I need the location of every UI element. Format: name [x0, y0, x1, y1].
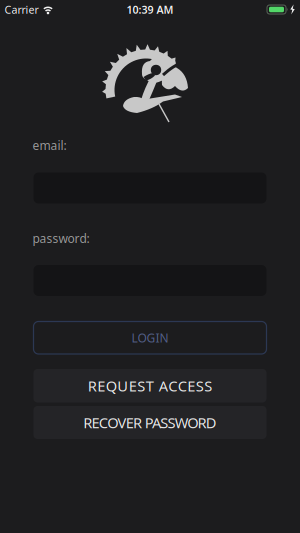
staticText: LOGIN	[131, 330, 168, 346]
staticText: password:	[32, 230, 89, 246]
staticText: email:	[32, 137, 66, 153]
staticText: Carrier	[4, 2, 38, 17]
staticText: RECOVER PASSWORD	[83, 413, 217, 432]
button[interactable]: LOGIN	[33, 321, 266, 354]
staticText: REQUEST ACCESS	[88, 376, 212, 395]
staticText: 10:39 AM	[126, 2, 173, 17]
button[interactable]: REQUEST ACCESS	[33, 369, 266, 402]
button[interactable]: RECOVER PASSWORD	[33, 406, 266, 439]
